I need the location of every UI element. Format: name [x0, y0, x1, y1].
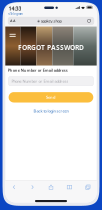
- staticText: appkey.shop: [40, 18, 61, 23]
- staticText: Phone Number or Email address: [8, 67, 68, 73]
- button[interactable]: Back to login screen: [9, 108, 93, 113]
- staticText: Telegram: [10, 12, 22, 16]
- staticText: AA: [10, 18, 16, 23]
- staticText: Back to login screen: [33, 108, 68, 114]
- button[interactable]: Share: [44, 182, 58, 192]
- button[interactable]: Tabs: [81, 182, 95, 192]
- staticText: 14:33: [8, 5, 21, 12]
- button[interactable]: Send: [9, 92, 93, 102]
- staticText: Send: [46, 95, 56, 100]
- staticText: Phone Number or Email address: [11, 78, 68, 84]
- button[interactable]: Forward: [26, 182, 39, 192]
- button[interactable]: Reload page: [84, 17, 94, 25]
- button[interactable]: Back: [7, 182, 21, 192]
- button[interactable]: Page settings: [8, 17, 18, 25]
- button[interactable]: Bookmarks: [63, 182, 76, 192]
- staticText: FORGOT PASSWORD: [18, 43, 84, 52]
